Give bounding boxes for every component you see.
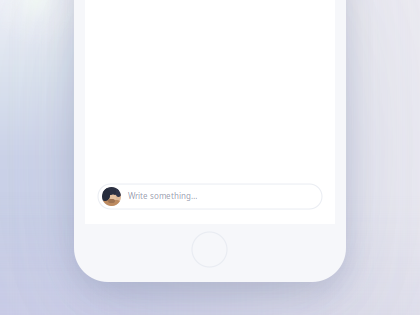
button[interactable]: Write something…: [98, 184, 322, 209]
staticText: Write something…: [128, 191, 197, 201]
